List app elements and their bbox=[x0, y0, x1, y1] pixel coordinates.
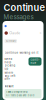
staticText: Continue working on it bbox=[4, 51, 38, 54]
staticText: Messages bbox=[3, 13, 33, 21]
staticText: Result bbox=[4, 85, 13, 88]
staticText: where you left off? bbox=[4, 71, 15, 81]
staticText: Need help picking up bbox=[4, 57, 15, 70]
staticText: > bbox=[39, 31, 41, 35]
staticText: Claude bbox=[9, 31, 20, 35]
staticText: All tests pass and build bbox=[6, 94, 35, 97]
staticText: Continue bbox=[3, 2, 45, 13]
staticText: summary bbox=[6, 39, 16, 43]
staticText: Continue bbox=[30, 58, 39, 65]
staticText: Task completed bbox=[6, 90, 28, 93]
